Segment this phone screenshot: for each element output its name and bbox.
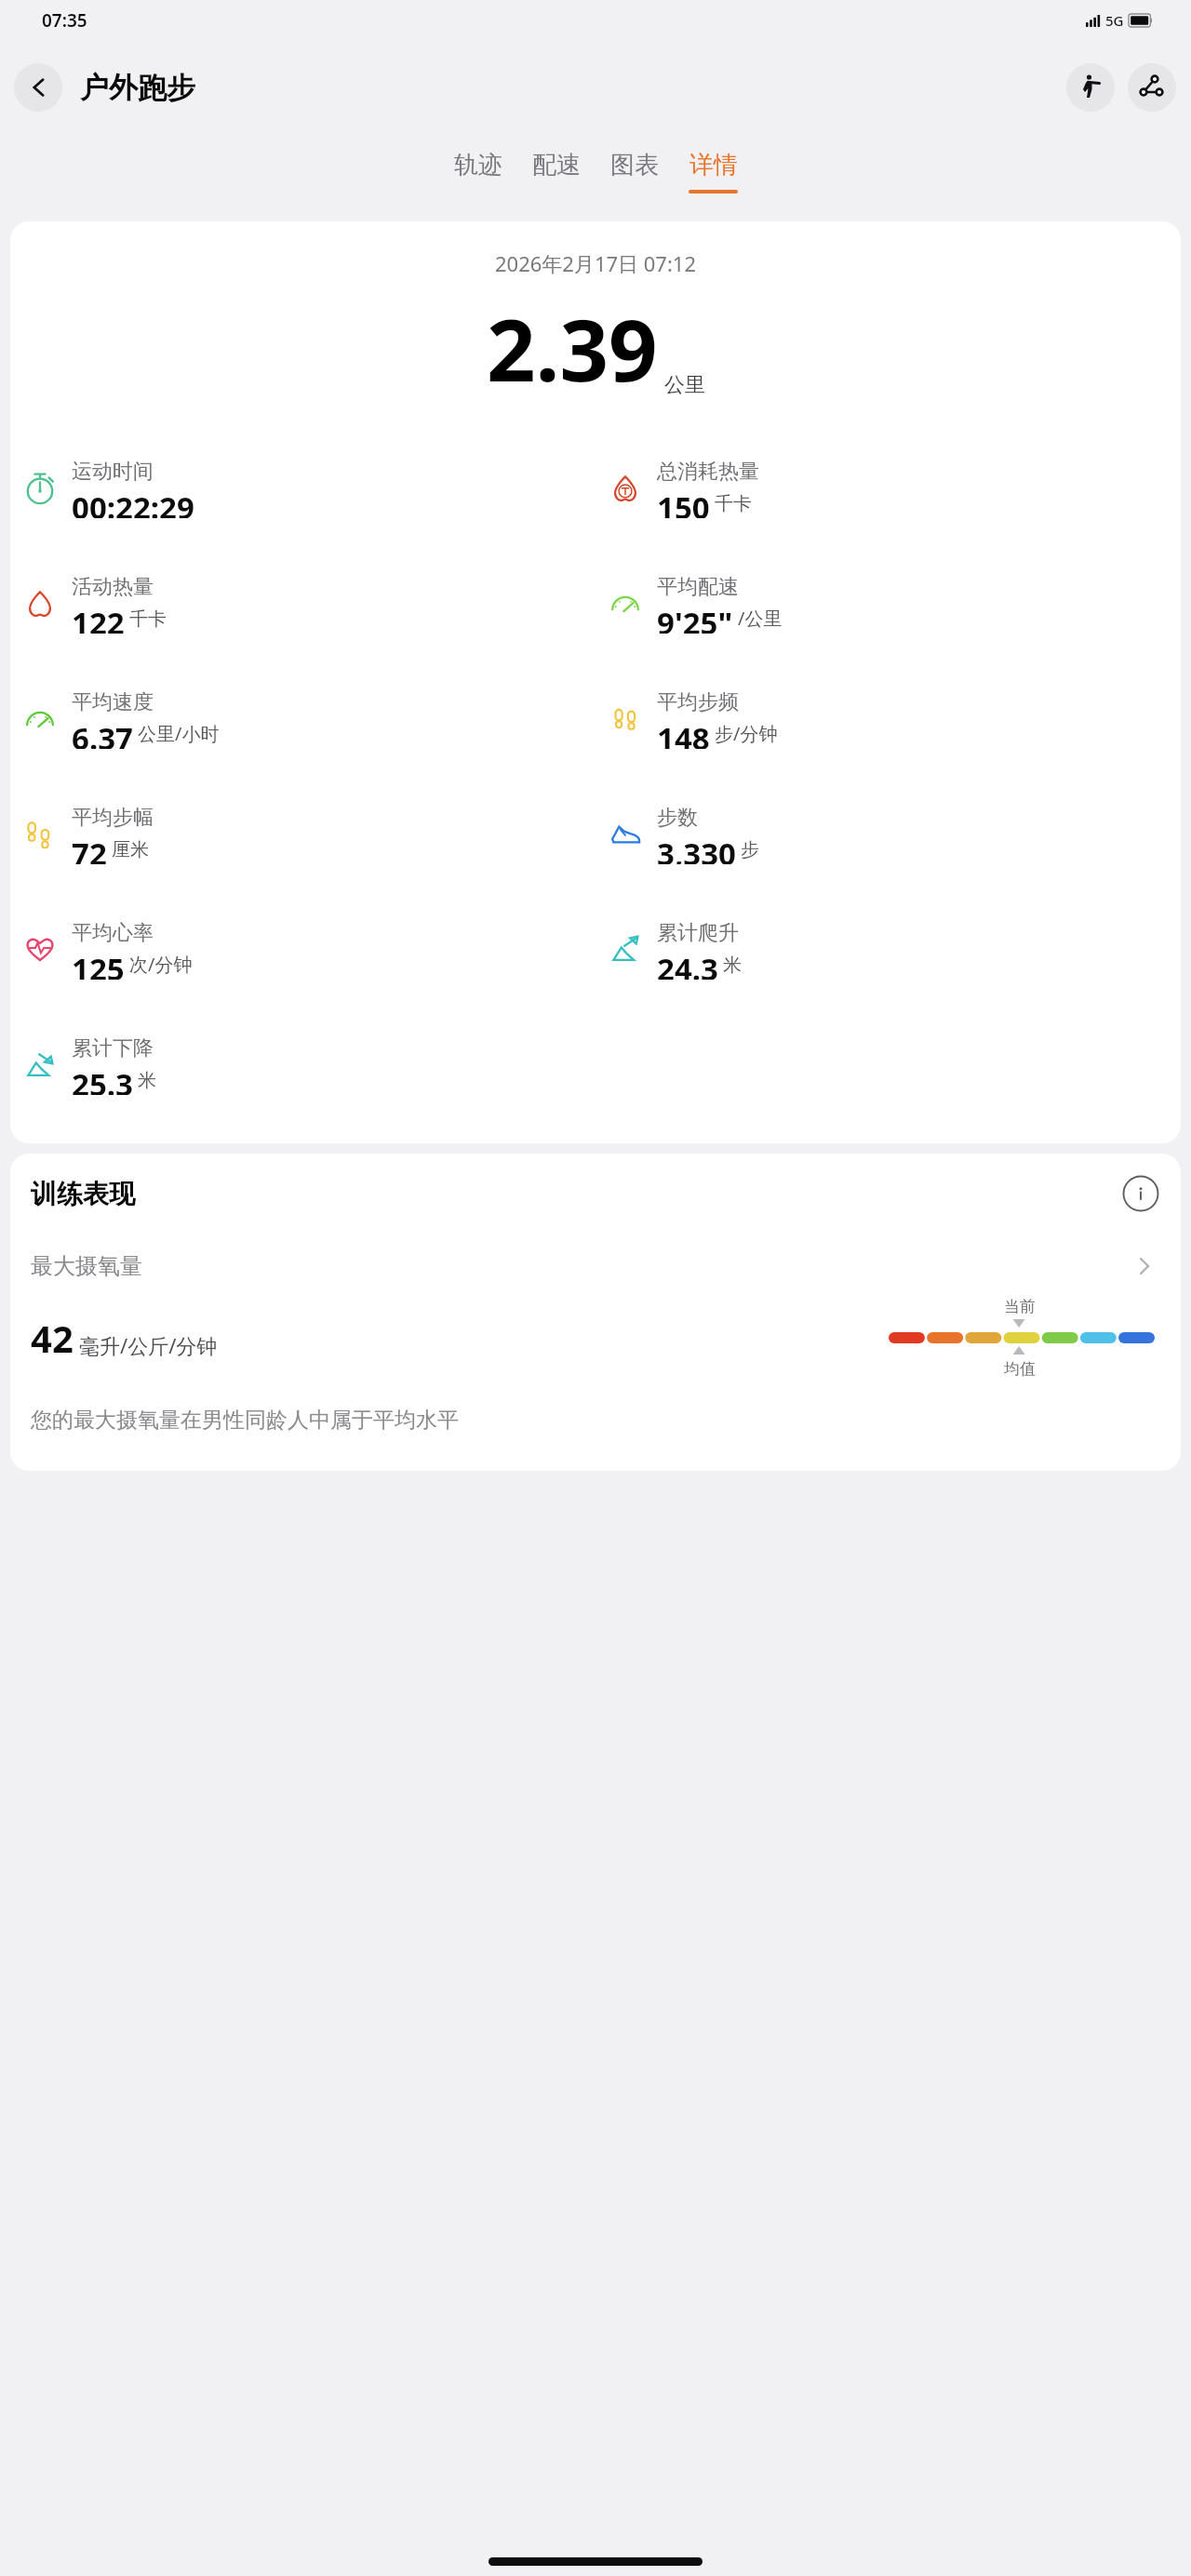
staticText: 平均步频 — [657, 689, 739, 715]
staticText: 步/分钟 — [715, 721, 778, 746]
button[interactable]: 总消耗热量 — [595, 459, 1181, 518]
staticText: 150 — [657, 487, 710, 518]
staticText: 均值 — [1004, 1359, 1036, 1379]
button[interactable]: Details — [1132, 1254, 1157, 1278]
staticText: 千卡 — [715, 492, 752, 515]
button[interactable]: 平均步幅 — [10, 805, 595, 864]
staticText: 42 — [31, 1313, 74, 1363]
staticText: 轨迹 — [454, 150, 502, 180]
button[interactable]: Activity type — [1066, 63, 1115, 112]
button[interactable]: 平均速度 — [10, 689, 595, 749]
button[interactable]: 配速 — [532, 135, 581, 211]
staticText: 累计下降 — [72, 1035, 154, 1061]
staticText: 00:22:29 — [72, 487, 194, 518]
button[interactable]: 运动时间 — [10, 459, 595, 518]
button[interactable]: 平均配速 — [595, 574, 1181, 634]
staticText: 平均心率 — [72, 920, 154, 946]
staticText: 毫升/公斤/分钟 — [79, 1331, 218, 1359]
staticText: 平均步幅 — [72, 805, 154, 831]
staticText: 步 — [741, 838, 759, 861]
staticText: 图表 — [610, 150, 659, 180]
button[interactable]: Share — [1128, 63, 1176, 112]
button[interactable]: 图表 — [610, 135, 659, 211]
staticText: 训练表现 — [31, 1178, 135, 1210]
button[interactable]: 平均步频 — [595, 689, 1181, 749]
staticText: 米 — [138, 1069, 156, 1092]
staticText: 125 — [72, 948, 125, 980]
staticText: 详情 — [689, 150, 738, 180]
staticText: 122 — [72, 602, 125, 634]
staticText: 6.37 — [72, 717, 133, 749]
staticText: 25.3 — [72, 1063, 133, 1095]
staticText: 5G — [1105, 11, 1124, 30]
staticText: 平均速度 — [72, 689, 154, 715]
staticText: 米 — [723, 954, 742, 977]
button[interactable]: 步数 — [595, 805, 1181, 864]
button[interactable]: Info — [1121, 1174, 1160, 1213]
staticText: 配速 — [532, 150, 581, 180]
staticText: 72 — [72, 833, 107, 864]
staticText: 07:35 — [42, 8, 87, 33]
button[interactable]: 活动热量 — [10, 574, 595, 634]
button[interactable]: 平均心率 — [10, 920, 595, 980]
staticText: /公里 — [738, 606, 783, 631]
staticText: 运动时间 — [72, 459, 154, 485]
staticText: 步数 — [657, 805, 698, 831]
staticText: 24.3 — [657, 948, 718, 980]
staticText: 148 — [657, 717, 710, 749]
staticText: 当前 — [1004, 1297, 1036, 1316]
staticText: 您的最大摄氧量在男性同龄人中属于平均水平 — [31, 1407, 459, 1434]
staticText: 2.39 — [487, 290, 658, 407]
staticText: 公里 — [664, 372, 705, 398]
button[interactable]: 轨迹 — [454, 135, 502, 211]
staticText: 9'25" — [657, 602, 733, 634]
staticText: 最大摄氧量 — [31, 1252, 142, 1280]
button[interactable]: 详情 — [689, 135, 738, 211]
staticText: 2026年2月17日 07:12 — [10, 249, 1181, 277]
staticText: 厘米 — [112, 838, 149, 861]
staticText: 3,330 — [657, 833, 736, 864]
staticText: 平均配速 — [657, 574, 739, 600]
staticText: 次/分钟 — [129, 952, 193, 977]
staticText: 公里/小时 — [138, 721, 220, 746]
staticText: 总消耗热量 — [657, 459, 759, 485]
button[interactable]: 累计爬升 — [595, 920, 1181, 980]
button[interactable]: Back — [14, 63, 62, 112]
staticText: 累计爬升 — [657, 920, 739, 946]
button[interactable]: 累计下降 — [10, 1035, 595, 1095]
staticText: 户外跑步 — [80, 70, 195, 106]
staticText: 活动热量 — [72, 574, 154, 600]
staticText: 千卡 — [129, 607, 167, 631]
